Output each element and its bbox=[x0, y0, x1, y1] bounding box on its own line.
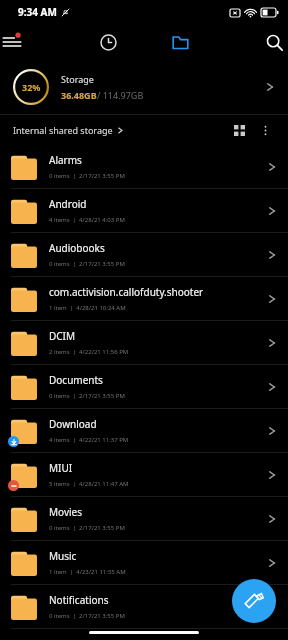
staticText: Music bbox=[49, 549, 77, 563]
staticText: com.activision.callofduty.shooter bbox=[49, 285, 204, 299]
button[interactable]: Movies bbox=[0, 497, 288, 541]
button[interactable]: Menu bbox=[0, 24, 72, 60]
staticText: 32% bbox=[22, 81, 41, 93]
staticText: Internal shared storage bbox=[13, 124, 113, 136]
staticText: 5 items | 4/28/21 11:47 AM bbox=[49, 480, 129, 488]
button[interactable]: Search bbox=[216, 24, 288, 60]
button[interactable]: Internal shared storage bbox=[13, 124, 124, 136]
button[interactable]: Clean up storage bbox=[232, 579, 276, 623]
staticText: 0 items | 2/17/21 3:55 PM bbox=[49, 260, 125, 268]
button[interactable]: Recent bbox=[72, 24, 144, 60]
button[interactable]: 32% bbox=[0, 60, 288, 114]
button[interactable]: Music bbox=[0, 541, 288, 585]
staticText: Documents bbox=[49, 373, 103, 387]
button[interactable]: Download bbox=[0, 409, 288, 453]
staticText: 0 items | 2/17/21 3:55 PM bbox=[49, 392, 125, 400]
staticText: Audiobooks bbox=[49, 241, 105, 255]
staticText: 2 items | 4/22/21 11:56 PM bbox=[49, 348, 129, 356]
staticText: DCIM bbox=[49, 329, 76, 343]
button[interactable]: Android bbox=[0, 189, 288, 233]
staticText: 0 items | 2/17/21 3:55 PM bbox=[49, 172, 125, 180]
staticText: Alarms bbox=[49, 153, 82, 167]
button[interactable]: Notifications bbox=[0, 585, 288, 629]
staticText: Movies bbox=[49, 505, 83, 519]
staticText: 1 item | 4/23/21 11:55 AM bbox=[49, 568, 126, 576]
button[interactable]: Audiobooks bbox=[0, 233, 288, 277]
staticText: 4 items | 4/22/21 11:37 PM bbox=[49, 436, 129, 444]
button[interactable]: Grid view bbox=[226, 117, 252, 143]
button[interactable]: Files bbox=[144, 24, 216, 60]
staticText: Notifications bbox=[49, 593, 109, 607]
staticText: 0 items | 2/17/21 3:55 PM bbox=[49, 612, 125, 620]
staticText: 4 items | 4/28/21 4:03 PM bbox=[49, 216, 125, 224]
staticText: MIUI bbox=[49, 461, 73, 475]
staticText: Download bbox=[49, 417, 97, 431]
button[interactable]: com.activision.callofduty.shooter bbox=[0, 277, 288, 321]
button[interactable]: MIUI bbox=[0, 453, 288, 497]
staticText: Android bbox=[49, 197, 87, 211]
button[interactable]: DCIM bbox=[0, 321, 288, 365]
staticText: 9:34 AM bbox=[18, 5, 57, 19]
button[interactable]: Alarms bbox=[0, 145, 288, 189]
staticText: 0 items | 2/17/21 3:55 PM bbox=[49, 524, 125, 532]
staticText: 1 item | 4/28/21 10:24 AM bbox=[49, 304, 126, 312]
staticText: / 114.97GB bbox=[97, 89, 144, 101]
staticText: Storage bbox=[61, 73, 94, 85]
button[interactable]: More options bbox=[252, 117, 278, 143]
staticText: 36.48GB bbox=[61, 89, 97, 101]
button[interactable]: Documents bbox=[0, 365, 288, 409]
